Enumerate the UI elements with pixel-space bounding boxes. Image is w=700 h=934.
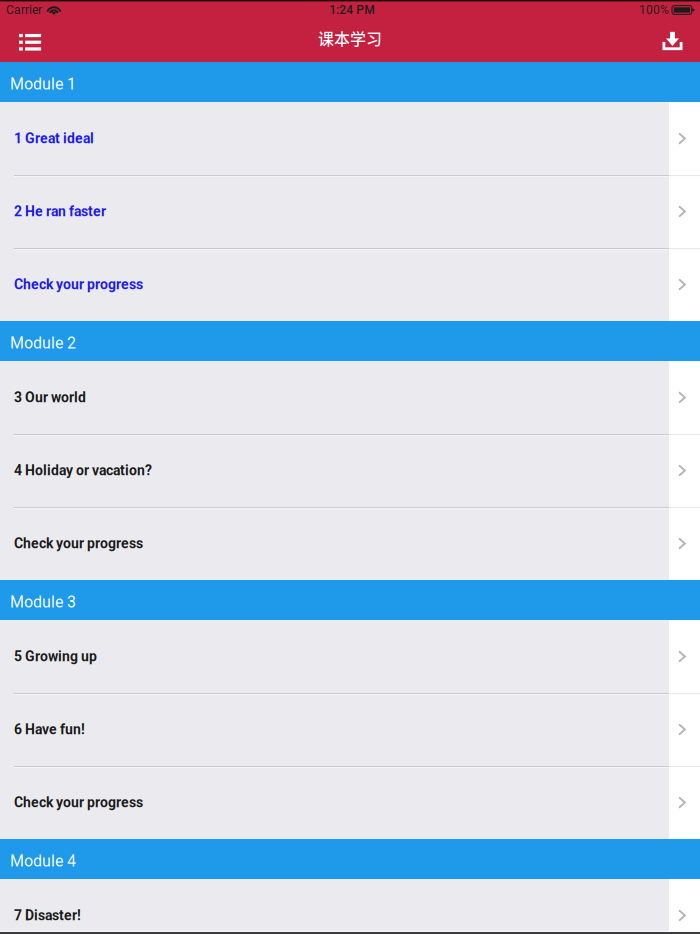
button[interactable]: 3 Our world [0, 361, 700, 434]
staticText: Check your progress [14, 276, 143, 293]
staticText: 2 He ran faster [14, 203, 106, 220]
button[interactable]: Check your progress [0, 248, 700, 321]
staticText: 课本学习 [318, 26, 382, 50]
button[interactable]: Check your progress [0, 507, 700, 580]
button[interactable]: Check your progress [0, 766, 700, 839]
staticText: Check your progress [14, 535, 143, 552]
staticText: Module 3 [10, 593, 76, 611]
staticText: Module 2 [10, 334, 76, 352]
staticText: 5 Growing up [14, 648, 97, 665]
button[interactable]: Download [620, 20, 700, 62]
staticText: 4 Holiday or vacation? [14, 462, 152, 479]
staticText: 100% [639, 3, 669, 17]
button[interactable]: 4 Holiday or vacation? [0, 434, 700, 507]
button[interactable]: 6 Have fun! [0, 693, 700, 766]
staticText: 1:24 PM [329, 3, 374, 17]
button[interactable]: 5 Growing up [0, 620, 700, 693]
staticText: Check your progress [14, 794, 143, 811]
staticText: Module 4 [10, 852, 76, 870]
button[interactable]: 2 He ran faster [0, 175, 700, 248]
staticText: Module 1 [10, 75, 76, 93]
staticText: 6 Have fun! [14, 721, 85, 738]
button[interactable]: 1 Great ideal [0, 102, 700, 175]
button[interactable]: 7 Disaster! [0, 879, 700, 934]
staticText: 3 Our world [14, 389, 86, 406]
button[interactable]: Menu [0, 20, 80, 62]
staticText: 1 Great ideal [14, 130, 94, 147]
staticText: 7 Disaster! [14, 907, 81, 924]
staticText: Carrier [6, 3, 42, 17]
